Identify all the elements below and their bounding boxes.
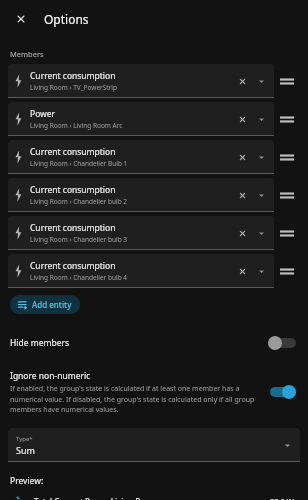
button[interactable]: Current consumption [8, 140, 274, 174]
staticText: Add entity [32, 299, 72, 310]
button[interactable]: Expand [252, 224, 270, 242]
button[interactable]: Remove member [232, 71, 252, 91]
staticText: Current consumption [30, 146, 116, 158]
button[interactable]: Expand [252, 186, 270, 204]
staticText: Sum [16, 444, 35, 456]
staticText: Current consumption [30, 222, 116, 234]
button[interactable]: Reorder [274, 216, 300, 250]
staticText: Living Room › Chandelier Bulb 1 [30, 159, 128, 168]
button[interactable]: Reorder [274, 178, 300, 212]
button[interactable]: Type* [8, 428, 300, 462]
button[interactable]: Expand [252, 262, 270, 280]
button[interactable]: Toggle [268, 383, 298, 401]
button[interactable]: Current consumption [8, 178, 274, 212]
staticText: If enabled, the group's state is calcula… [10, 384, 266, 414]
button[interactable]: Expand [252, 110, 270, 128]
staticText: Living Room › TV_PowerStrip [30, 83, 118, 92]
button[interactable]: Expand [252, 72, 270, 90]
button[interactable]: Remove member [232, 109, 252, 129]
button[interactable]: Toggle [268, 334, 298, 352]
button[interactable]: Close [10, 8, 32, 30]
button[interactable]: Reorder [274, 64, 300, 98]
button[interactable]: Power [8, 102, 274, 136]
staticText: Current consumption [30, 184, 116, 196]
staticText: Preview: [10, 475, 44, 487]
staticText: Hide members [10, 337, 268, 349]
button[interactable]: Expand [252, 148, 270, 166]
staticText: Living Room › Chandelier bulb 3 [30, 235, 128, 244]
staticText: Living Room › Chandelier bulb 4 [30, 273, 128, 282]
button[interactable]: Remove member [232, 223, 252, 243]
staticText: Living Room › Chandelier bulb 2 [30, 197, 128, 206]
button[interactable]: Remove member [232, 185, 252, 205]
staticText: Current consumption [30, 260, 116, 272]
button[interactable]: Current consumption [8, 254, 274, 288]
staticText: Power [30, 108, 56, 120]
staticText: Members [10, 49, 44, 59]
staticText: Current consumption [30, 70, 116, 82]
button[interactable]: Reorder [274, 140, 300, 174]
button[interactable]: Current consumption [8, 64, 274, 98]
button[interactable]: Current consumption [8, 216, 274, 250]
staticText: Living Room › Living Room Arc [30, 121, 123, 130]
staticText: 28.9 W [270, 496, 294, 500]
button[interactable]: Remove member [232, 147, 252, 167]
staticText: Total Current Power Living Room [34, 496, 270, 500]
staticText: Ignore non-numeric [10, 370, 91, 382]
staticText: Options [44, 11, 89, 27]
button[interactable]: Reorder [274, 102, 300, 136]
button[interactable]: Add entity [10, 295, 80, 314]
button[interactable]: Reorder [274, 254, 300, 288]
button[interactable]: Remove member [232, 261, 252, 281]
button[interactable]: Total Current Power Living Room [14, 496, 294, 500]
staticText: Type* [16, 435, 33, 443]
